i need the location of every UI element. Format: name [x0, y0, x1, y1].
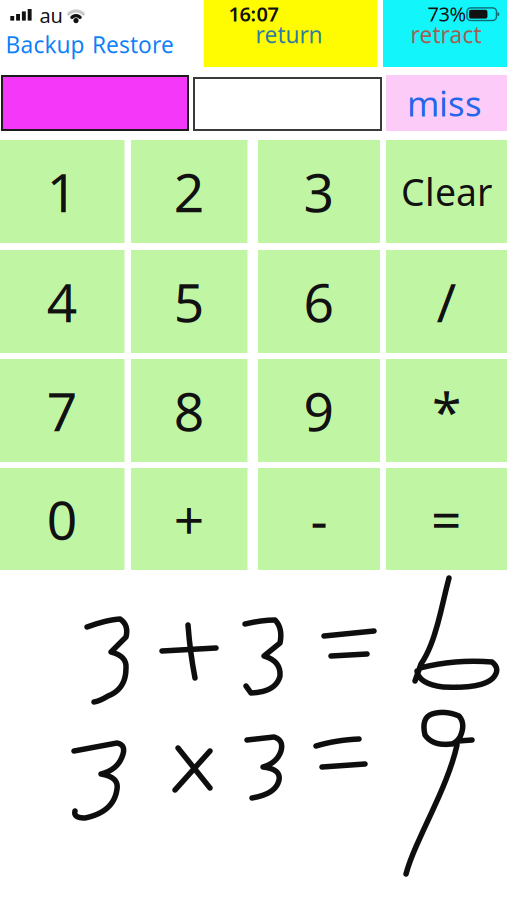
- staticText: retract: [410, 19, 481, 49]
- staticText: Backup: [5, 29, 84, 59]
- button[interactable]: /: [386, 250, 507, 353]
- staticText: 8: [174, 375, 205, 446]
- staticText: 3: [303, 156, 334, 227]
- button[interactable]: =: [386, 468, 507, 570]
- button[interactable]: 3: [258, 140, 380, 243]
- button[interactable]: -: [258, 468, 380, 570]
- staticText: 73%: [427, 0, 466, 27]
- button[interactable]: *: [386, 359, 507, 462]
- button[interactable]: retract: [383, 0, 507, 67]
- staticText: 9: [303, 375, 334, 446]
- staticText: 1: [47, 156, 78, 227]
- button[interactable]: Restore: [92, 29, 174, 59]
- staticText: Clear: [401, 167, 492, 216]
- button[interactable]: 9: [258, 359, 380, 462]
- staticText: 7: [47, 375, 78, 446]
- button[interactable]: return: [204, 0, 377, 67]
- button[interactable]: 7: [0, 359, 124, 462]
- staticText: 4: [47, 266, 78, 337]
- staticText: 6: [303, 266, 334, 337]
- button[interactable]: 2: [131, 140, 247, 243]
- staticText: 0: [47, 484, 78, 554]
- button[interactable]: Clear: [386, 140, 507, 243]
- button[interactable]: 0: [0, 468, 124, 570]
- button[interactable]: 6: [258, 250, 380, 353]
- staticText: return: [255, 19, 322, 49]
- staticText: Restore: [92, 29, 174, 59]
- button[interactable]: 4: [0, 250, 124, 353]
- button[interactable]: 8: [131, 359, 247, 462]
- button[interactable]: 1: [0, 140, 124, 243]
- staticText: /: [436, 266, 456, 337]
- staticText: =: [431, 484, 462, 554]
- button[interactable]: +: [131, 468, 247, 570]
- staticText: 16:07: [228, 0, 278, 27]
- button[interactable]: 5: [131, 250, 247, 353]
- staticText: *: [432, 375, 461, 446]
- staticText: miss: [407, 80, 482, 126]
- staticText: au: [39, 2, 62, 28]
- staticText: 2: [174, 156, 205, 227]
- staticText: 5: [174, 266, 205, 337]
- button[interactable]: Backup: [5, 29, 84, 59]
- staticText: +: [174, 484, 205, 554]
- staticText: -: [310, 484, 327, 554]
